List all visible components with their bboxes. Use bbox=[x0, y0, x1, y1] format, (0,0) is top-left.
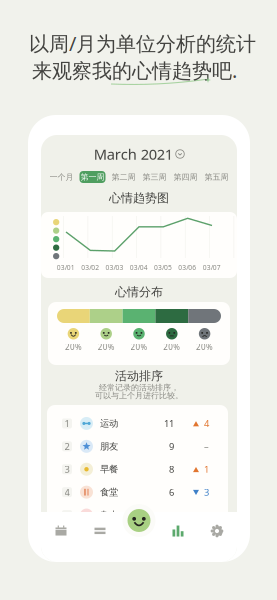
staticText: 第一周 bbox=[80, 172, 104, 182]
button[interactable]: March 2021 bbox=[41, 146, 237, 162]
staticText: 20% bbox=[163, 341, 180, 352]
staticText: 8 bbox=[169, 463, 174, 475]
staticText: 03/04 bbox=[130, 263, 148, 272]
staticText: 3 bbox=[204, 486, 209, 498]
staticText: – bbox=[204, 440, 209, 453]
staticText: 4 bbox=[204, 417, 209, 430]
staticText: 3 bbox=[64, 463, 69, 475]
button[interactable]: 5 bbox=[47, 504, 228, 526]
staticText: 经常记录的活动排序， bbox=[99, 383, 179, 392]
button[interactable]: 第二周 bbox=[108, 171, 139, 183]
staticText: 第三周 bbox=[142, 172, 166, 182]
staticText: 杂志 bbox=[100, 509, 118, 521]
staticText: March 2021 bbox=[94, 144, 173, 164]
staticText: 可以与上个月进行比较。 bbox=[95, 391, 183, 400]
staticText: 03/02 bbox=[81, 263, 99, 272]
staticText: 11 bbox=[164, 417, 174, 430]
staticText: 20% bbox=[65, 341, 82, 352]
staticText: 9 bbox=[169, 440, 174, 453]
staticText: 以周/月为单位分析的统计 bbox=[29, 30, 256, 57]
button[interactable]: Entries bbox=[80, 519, 119, 543]
staticText: 第五周 bbox=[204, 172, 228, 182]
staticText: 4 bbox=[64, 486, 69, 498]
staticText: 活动排序 bbox=[115, 369, 163, 383]
button[interactable]: 第四周 bbox=[170, 171, 201, 183]
staticText: 20% bbox=[98, 341, 115, 352]
button[interactable]: 第三周 bbox=[139, 171, 170, 183]
staticText: 一个月 bbox=[49, 172, 73, 182]
staticText: 2 bbox=[64, 440, 69, 453]
button[interactable]: 1 bbox=[47, 412, 228, 435]
button[interactable]: Settings bbox=[197, 519, 236, 543]
staticText: 早餐 bbox=[100, 463, 118, 475]
staticText: 20% bbox=[130, 341, 147, 352]
staticText: 03/05 bbox=[154, 263, 172, 272]
staticText: 运动 bbox=[100, 418, 118, 429]
button[interactable]: Statistics bbox=[158, 519, 197, 543]
staticText: 心情趋势图 bbox=[109, 191, 169, 205]
staticText: 1 bbox=[64, 417, 69, 430]
staticText: 03/03 bbox=[105, 263, 123, 272]
button[interactable]: 2 bbox=[47, 435, 228, 458]
button[interactable]: 3 bbox=[47, 458, 228, 481]
staticText: 来观察我的心情趋势吧. bbox=[32, 57, 237, 84]
staticText: 食堂 bbox=[100, 486, 118, 498]
button[interactable]: 第五周 bbox=[201, 171, 232, 183]
staticText: 朋友 bbox=[100, 441, 118, 452]
button[interactable]: 第一周 bbox=[77, 171, 108, 183]
button[interactable]: Calendar bbox=[41, 519, 80, 543]
staticText: 第二周 bbox=[111, 172, 135, 182]
staticText: 03/06 bbox=[178, 263, 196, 272]
staticText: 心情分布 bbox=[115, 285, 163, 299]
staticText: 20% bbox=[196, 341, 213, 352]
staticText: 5 bbox=[64, 509, 69, 521]
button[interactable]: 一个月 bbox=[46, 171, 77, 183]
staticText: 第四周 bbox=[173, 172, 197, 182]
staticText: 1 bbox=[204, 463, 209, 475]
button[interactable]: 4 bbox=[47, 481, 228, 504]
staticText: 03/07 bbox=[203, 263, 221, 272]
staticText: 6 bbox=[169, 486, 174, 498]
button[interactable]: New entry bbox=[122, 504, 155, 537]
staticText: 03/01 bbox=[57, 263, 75, 272]
